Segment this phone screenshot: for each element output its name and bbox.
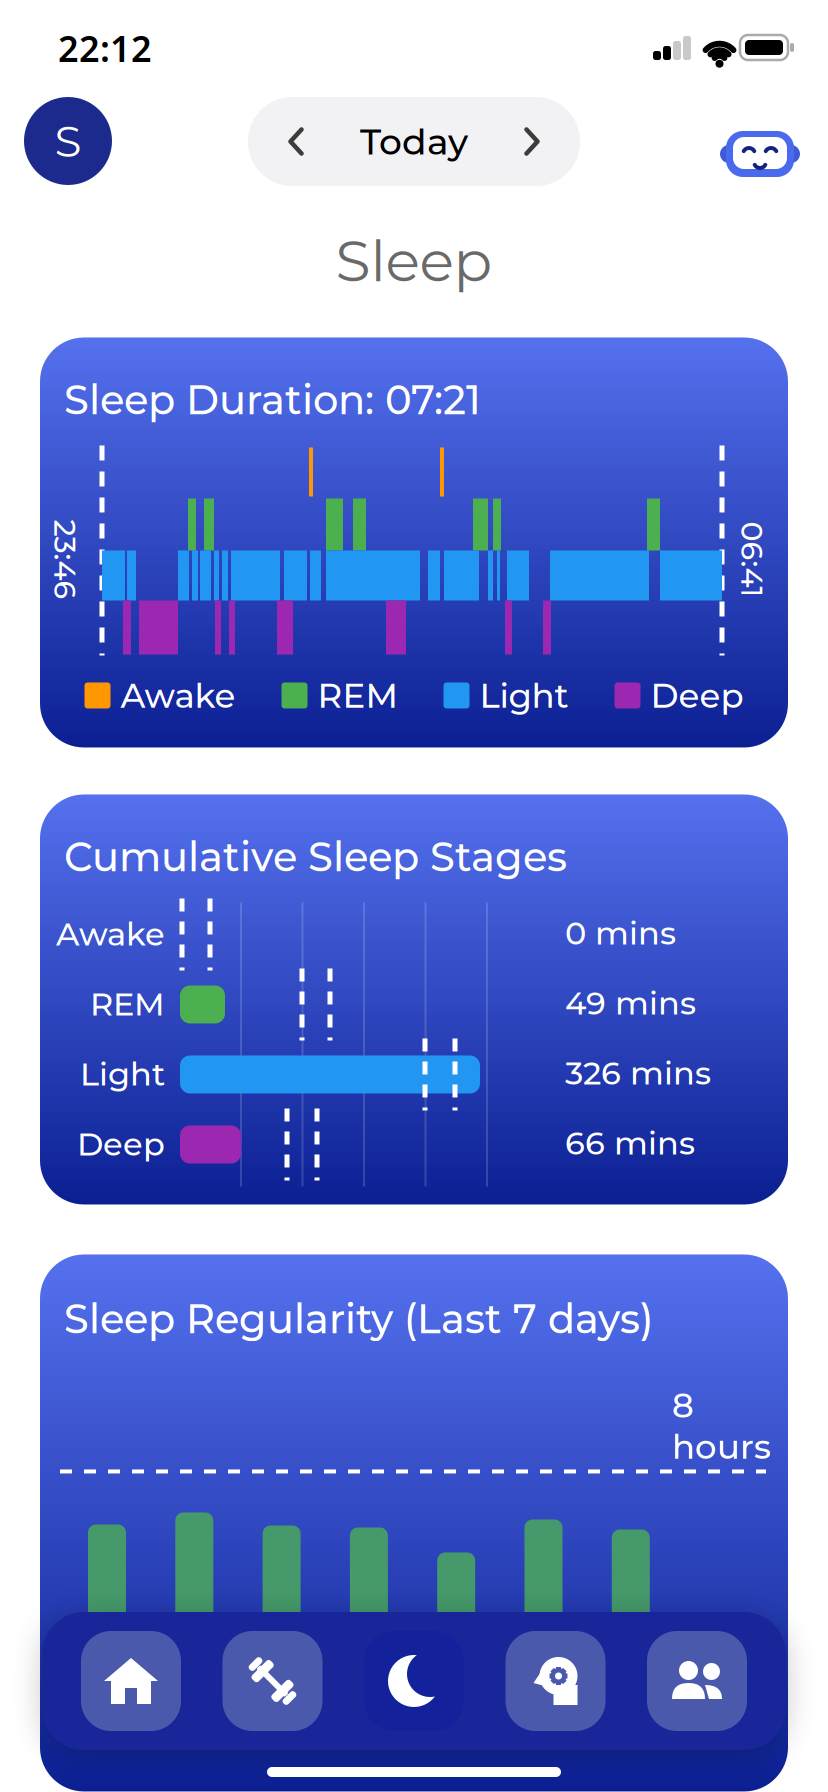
staticText: 06:41: [714, 541, 790, 578]
staticText: REM: [90, 984, 165, 1023]
staticText: Light: [80, 1054, 165, 1093]
staticText: Sleep Regularity (Last 7 days): [64, 1294, 654, 1343]
button[interactable]: Next day: [502, 97, 562, 186]
staticText: Sleep Duration: 07:21: [64, 375, 481, 424]
staticText: 0 mins: [565, 913, 676, 952]
staticText: 326 mins: [565, 1053, 711, 1092]
button[interactable]: Profile: [24, 97, 112, 185]
staticText: 23:46: [25, 541, 105, 578]
button[interactable]: Home: [81, 1631, 181, 1731]
button[interactable]: Today: [360, 120, 468, 163]
staticText: Awake: [56, 914, 165, 953]
staticText: hours: [672, 1426, 771, 1467]
staticText: Sleep: [335, 226, 492, 295]
button[interactable]: Previous day: [266, 97, 326, 186]
staticText: 49 mins: [565, 983, 696, 1022]
staticText: 8: [672, 1384, 694, 1426]
staticText: 22:12: [58, 24, 152, 72]
button[interactable]: Mind: [505, 1631, 605, 1731]
button[interactable]: Workouts: [222, 1631, 322, 1731]
staticText: Awake: [120, 675, 235, 716]
staticText: REM: [317, 675, 397, 716]
staticText: Cumulative Sleep Stages: [64, 832, 567, 881]
staticText: Deep: [77, 1124, 165, 1163]
button[interactable]: Sleep: [364, 1631, 464, 1731]
staticText: 66 mins: [565, 1123, 695, 1162]
staticText: Light: [479, 675, 568, 716]
button[interactable]: Community: [647, 1631, 747, 1731]
staticText: Today: [360, 120, 468, 163]
button[interactable]: Assistant: [714, 109, 794, 177]
staticText: S: [54, 114, 81, 168]
staticText: Deep: [650, 675, 743, 716]
